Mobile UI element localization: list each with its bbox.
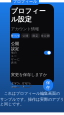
staticText: これはプロフィール編集画面の xyxy=(4,91,60,96)
staticText: 非公開 xyxy=(41,34,50,37)
button[interactable]: 公開設定 xyxy=(44,51,51,55)
staticText: プロフィール設定 xyxy=(11,7,46,23)
button[interactable]: 非公開 xyxy=(41,33,50,38)
staticText: キャンセル xyxy=(11,82,20,88)
button[interactable]: 公開 xyxy=(21,33,30,38)
staticText: 限定 xyxy=(32,34,38,37)
staticText: サンプルです。操作は実際のアプリと同じです。 xyxy=(0,97,64,107)
staticText: 公開設定 xyxy=(11,41,19,51)
button[interactable]: すべて xyxy=(11,33,20,38)
staticText: 保存 xyxy=(46,80,50,90)
staticText: すべて xyxy=(11,34,20,37)
button[interactable]: キャンセル xyxy=(11,82,20,87)
staticText: 他のユーザーに表示 xyxy=(11,51,20,64)
button[interactable]: 限定 xyxy=(31,33,40,38)
button[interactable]: リセット xyxy=(22,82,31,87)
staticText: アカウント情報 xyxy=(11,26,39,31)
staticText: 公開 xyxy=(22,34,28,37)
staticText: 変更を保存しますか xyxy=(11,72,47,77)
staticText: プロフィール xyxy=(13,0,37,4)
staticText: リセット xyxy=(22,82,31,88)
